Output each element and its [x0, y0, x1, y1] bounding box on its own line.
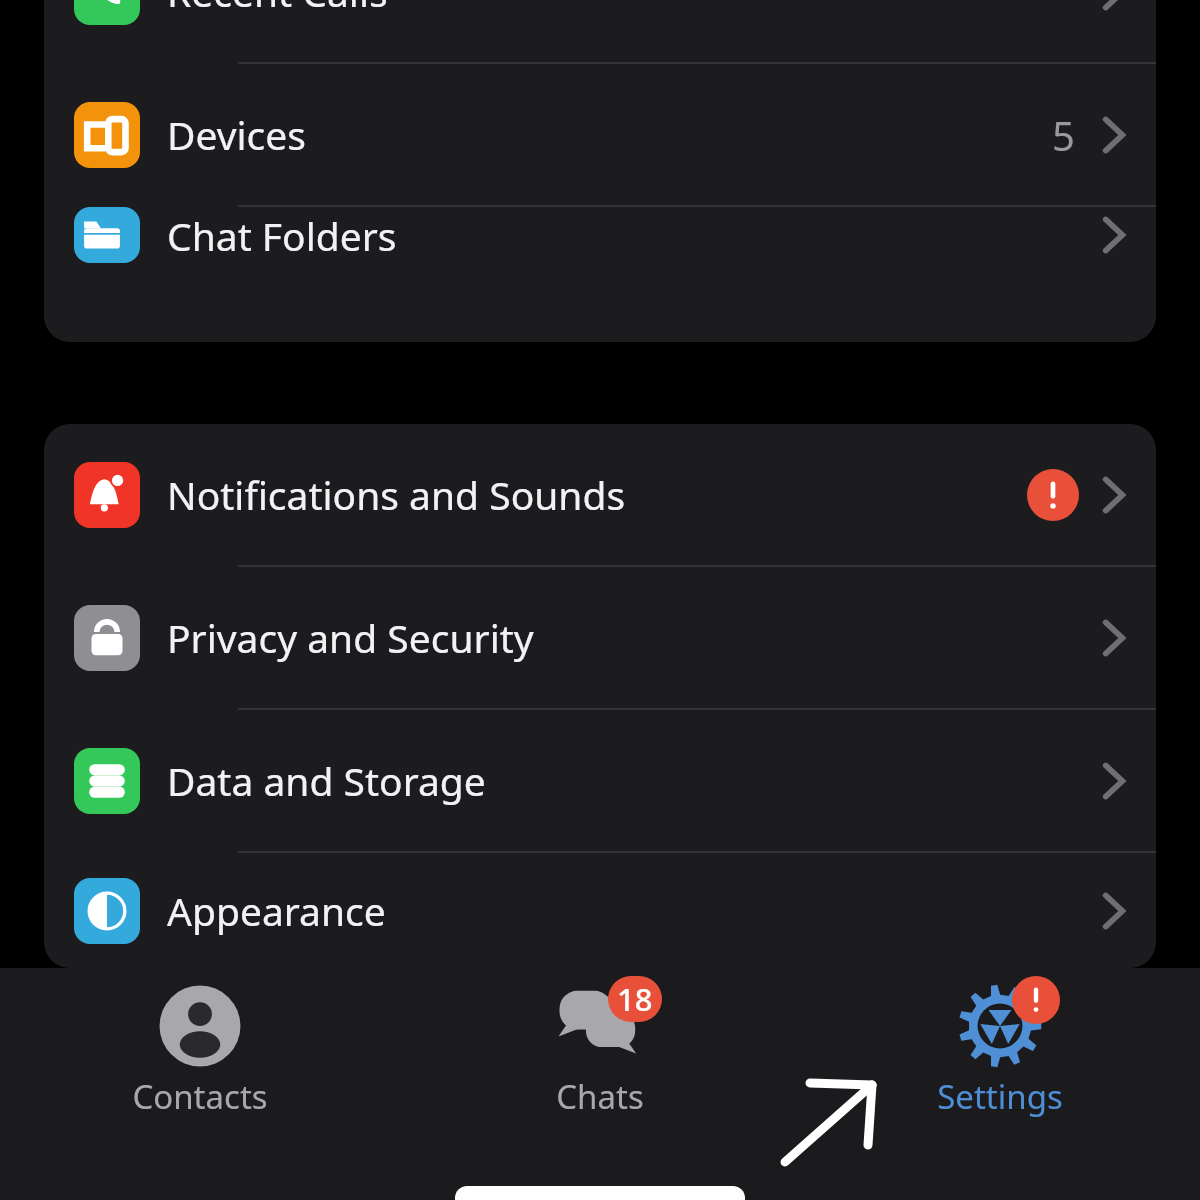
- button[interactable]: Devices: [44, 64, 1156, 205]
- staticText: Recent Calls: [167, 0, 1101, 18]
- button[interactable]: Contacts: [65, 968, 335, 1119]
- staticText: Chat Folders: [167, 209, 1101, 262]
- button[interactable]: Data and Storage: [44, 710, 1156, 851]
- staticText: Contacts: [132, 1074, 268, 1119]
- staticText: 18: [617, 978, 653, 1020]
- button[interactable]: Privacy and Security: [44, 567, 1156, 708]
- staticText: 5: [1052, 108, 1075, 162]
- staticText: Chats: [556, 1074, 644, 1119]
- button[interactable]: Recent Calls: [44, 0, 1156, 62]
- button[interactable]: 18: [465, 968, 735, 1119]
- staticText: Settings: [937, 1074, 1063, 1119]
- staticText: Data and Storage: [167, 754, 1101, 807]
- staticText: Appearance: [167, 884, 1101, 937]
- button[interactable]: Chat Folders: [44, 207, 1156, 263]
- button[interactable]: Notifications and Sounds: [44, 424, 1156, 565]
- staticText: Notifications and Sounds: [167, 468, 1027, 521]
- staticText: Privacy and Security: [167, 611, 1101, 664]
- button[interactable]: Settings: [865, 968, 1135, 1119]
- staticText: Devices: [167, 108, 1052, 161]
- button[interactable]: Appearance: [44, 853, 1156, 968]
